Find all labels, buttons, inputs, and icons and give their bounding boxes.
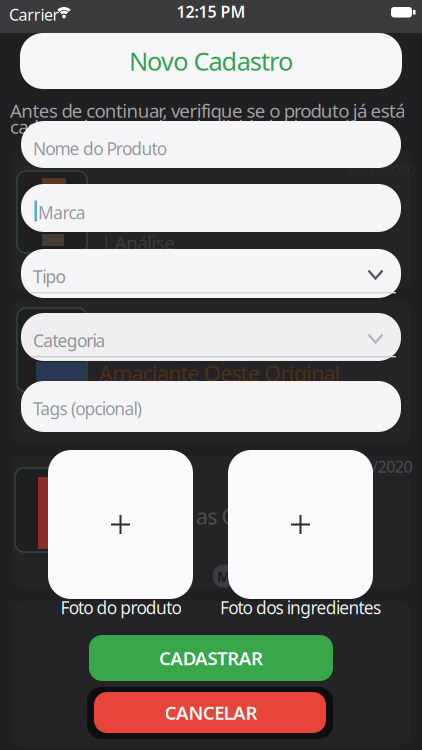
staticText: | Análise (101, 230, 175, 255)
staticText: Sabão Líquido (101, 375, 208, 396)
staticText: CANCELAR (165, 700, 257, 725)
staticText: cadastrado para evitar duplicidade de pr… (10, 114, 389, 139)
staticText: CADASTRAR (159, 646, 263, 670)
staticText: Categoria (33, 329, 106, 352)
staticText: Foto do produto (61, 596, 181, 619)
staticText: Carrier (9, 4, 60, 25)
staticText: Nome do Produto (33, 137, 167, 160)
staticText: /2020 (372, 456, 412, 477)
staticText: Amaciante Oeste Original (99, 359, 341, 387)
staticText: Marca (38, 201, 86, 224)
staticText: 12:15 PM (176, 1, 245, 22)
staticText: 19/09/2020 (345, 160, 415, 179)
staticText: Antes de continuar, verifique se o produ… (10, 98, 405, 123)
staticText: M (217, 566, 231, 586)
staticText: Novo Cadastro (129, 44, 293, 78)
staticText: Tipo (33, 265, 66, 288)
staticText: as Ge (196, 502, 249, 530)
staticText: Foto dos ingredientes (220, 596, 381, 619)
staticText: Tags (opcional) (33, 397, 142, 420)
